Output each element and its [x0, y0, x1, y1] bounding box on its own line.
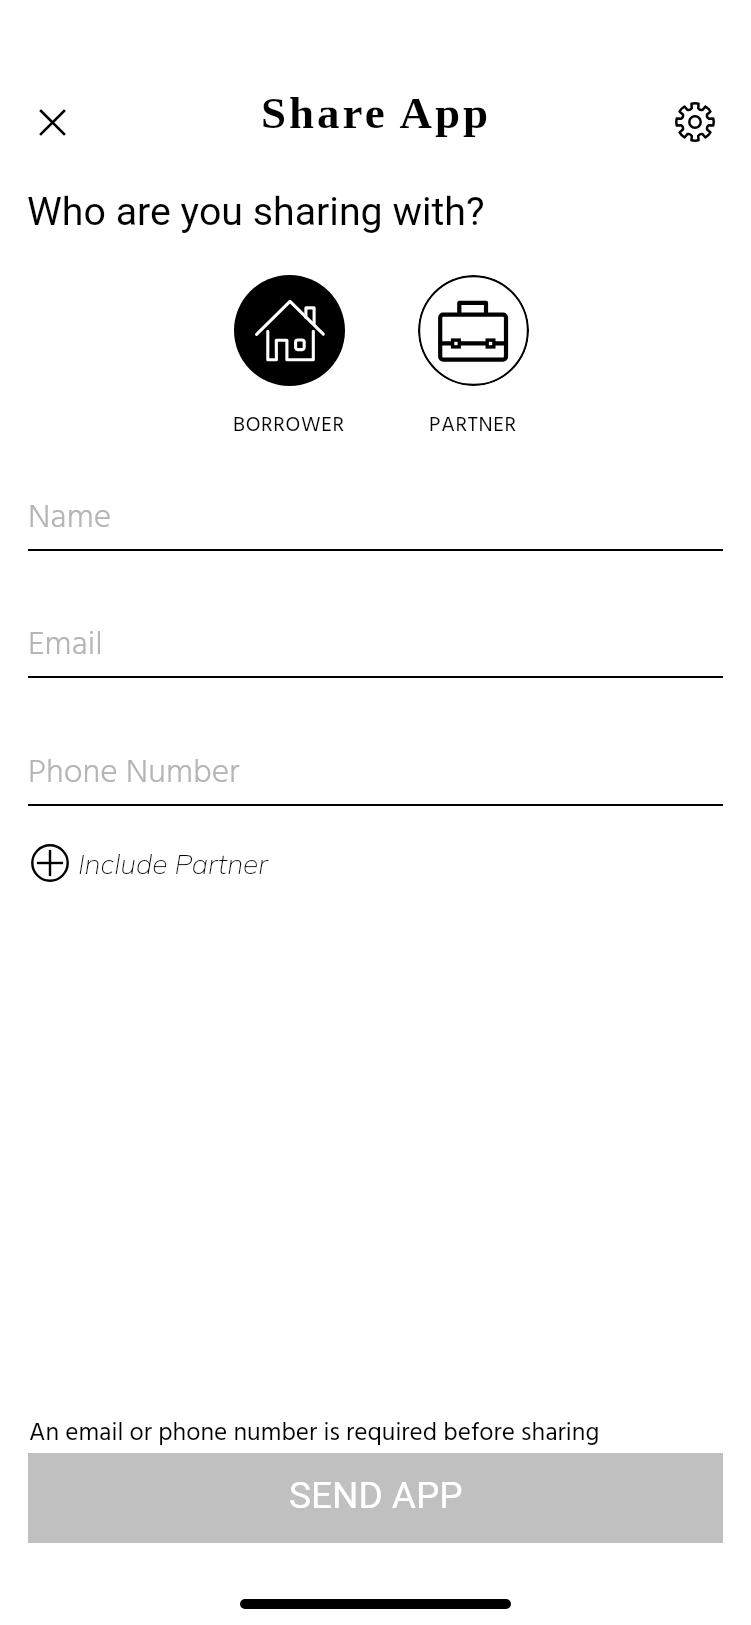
- staticText: Email: [28, 619, 103, 673]
- staticText: BORROWER: [233, 409, 345, 443]
- button[interactable]: [28, 723, 723, 806]
- button[interactable]: Include Partner: [31, 841, 268, 885]
- staticText: An email or phone number is required bef…: [29, 1413, 600, 1454]
- staticText: Phone Number: [28, 747, 240, 801]
- button[interactable]: [28, 595, 723, 678]
- button[interactable]: PARTNER: [393, 275, 553, 443]
- button[interactable]: Close: [12, 81, 93, 162]
- button[interactable]: [28, 468, 723, 551]
- button[interactable]: Settings: [654, 81, 735, 162]
- staticText: Name: [28, 492, 112, 546]
- button[interactable]: SEND APP: [28, 1453, 723, 1543]
- button[interactable]: BORROWER: [209, 275, 369, 443]
- staticText: SEND APP: [289, 1474, 463, 1517]
- staticText: Share App: [261, 88, 492, 138]
- staticText: Who are you sharing with?: [27, 189, 485, 235]
- staticText: Include Partner: [78, 846, 268, 881]
- staticText: PARTNER: [429, 409, 517, 443]
